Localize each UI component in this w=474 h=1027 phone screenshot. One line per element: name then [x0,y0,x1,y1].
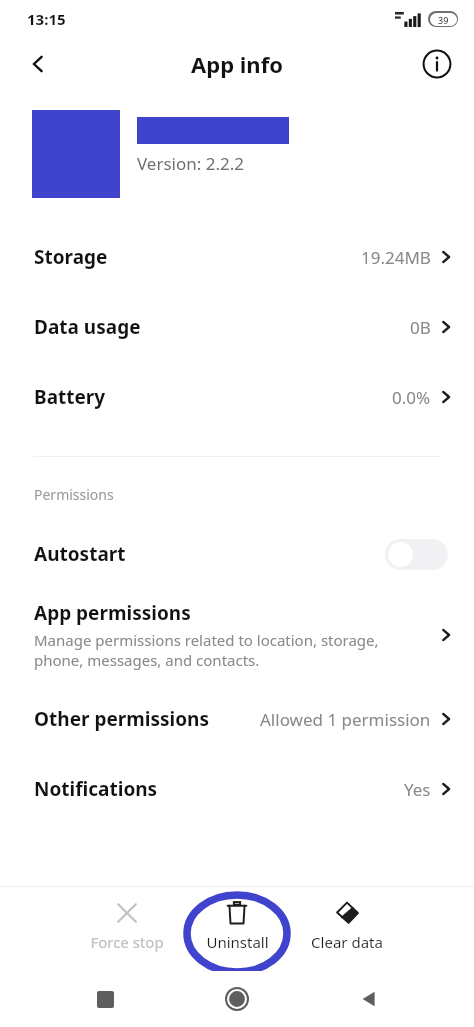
staticText: Uninstall [206,932,269,952]
staticText: 0.0% [392,386,431,409]
staticText: Other permissions [34,706,209,732]
staticText: Permissions [34,485,114,504]
staticText: Data usage [34,314,141,340]
button[interactable]: Back [342,972,396,1026]
staticText: App info [191,49,283,79]
button[interactable]: Uninstall [187,896,287,956]
button[interactable]: Home [210,972,264,1026]
button[interactable]: Clear data [297,896,397,956]
staticText: 19.24MB [361,246,431,269]
staticText: Manage permissions related to location, … [34,630,379,650]
staticText: Storage [34,244,108,270]
button[interactable]: App permissions [0,594,474,676]
staticText: Notifications [34,776,158,802]
button[interactable]: Notifications [0,754,474,824]
button[interactable]: Recent apps [78,972,132,1026]
button[interactable]: Data usage [0,292,474,362]
staticText: Version: 2.2.2 [137,152,245,175]
staticText: Battery [34,384,106,410]
button[interactable]: Battery [0,362,474,432]
button[interactable]: Back [16,42,60,86]
staticText: Yes [404,778,431,801]
button[interactable]: Force stop [77,896,177,956]
staticText: 13:15 [27,9,66,29]
staticText: App permissions [34,600,191,626]
button[interactable]: App details [417,44,457,84]
staticText: 0B [410,316,431,339]
button[interactable]: Autostart [0,526,474,582]
staticText: Autostart [34,541,126,567]
button[interactable]: Storage [0,222,474,292]
staticText: Clear data [311,932,383,952]
button[interactable]: Other permissions [0,684,474,754]
staticText: Allowed 1 permission [260,708,431,731]
staticText: phone, messages, and contacts. [34,650,260,670]
staticText: Force stop [90,932,164,952]
staticText: 39 [438,14,449,26]
